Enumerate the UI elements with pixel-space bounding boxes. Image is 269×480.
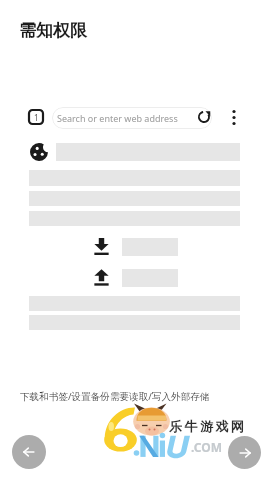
staticText: Search or enter web address: [57, 112, 178, 124]
button[interactable]: Search or enter web address: [52, 107, 212, 129]
button[interactable]: More options: [228, 108, 240, 128]
button[interactable]: Next: [228, 436, 261, 469]
staticText: 下载和书签/设置备份需要读取/写入外部存储: [20, 390, 210, 403]
button[interactable]: Tabs: [29, 110, 43, 124]
staticText: .COM: [191, 439, 223, 455]
staticText: 需知权限: [19, 20, 87, 41]
staticText: 乐牛游戏网: [168, 418, 245, 434]
staticText: 1: [34, 112, 39, 123]
button[interactable]: Back: [12, 435, 46, 469]
button[interactable]: Reload: [198, 111, 210, 123]
